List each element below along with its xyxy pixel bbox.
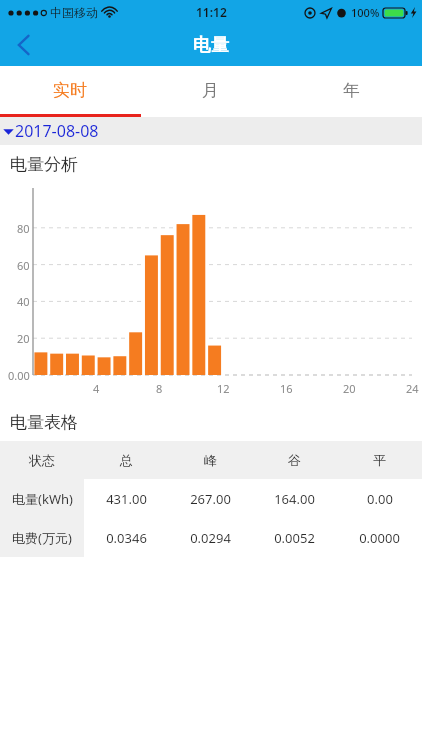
staticText: 80 [17,221,30,236]
staticText: 0.0000 [359,529,400,547]
button[interactable]: 月 [140,66,281,114]
staticText: 20 [343,381,356,396]
staticText: 24 [406,381,419,396]
staticText: 267.00 [190,490,231,508]
staticText: 20 [17,331,30,346]
staticText: 峰 [204,452,217,468]
staticText: 电量分析 [10,154,78,175]
staticText: 12 [217,381,230,396]
staticText: 年 [343,80,360,101]
staticText: 0.00 [367,490,393,508]
staticText: 电量表格 [10,412,78,433]
button[interactable]: Back [0,24,48,66]
staticText: 状态 [29,452,55,468]
staticText: 谷 [288,452,301,468]
staticText: 平 [373,452,386,468]
staticText: 16 [280,381,293,396]
staticText: 0.0294 [190,529,231,547]
staticText: 0.00 [8,368,30,383]
staticText: 0.0346 [106,529,147,547]
staticText: 4 [93,381,100,396]
staticText: 11:12 [196,4,227,20]
staticText: 电量 [193,34,229,57]
staticText: 月 [202,80,219,101]
staticText: 100% [351,5,380,20]
staticText: 2017-08-08 [15,120,99,142]
staticText: 0.0052 [274,529,315,547]
button[interactable]: 2017-08-08 [0,117,422,145]
staticText: 总 [120,452,133,468]
staticText: 电费(万元) [12,529,72,547]
staticText: 8 [156,381,163,396]
staticText: 60 [17,258,30,273]
staticText: 431.00 [106,490,147,508]
staticText: 164.00 [274,490,315,508]
staticText: 中国移动 [50,5,98,20]
button[interactable]: 年 [281,66,422,114]
staticText: 40 [17,294,30,309]
button[interactable]: 实时 [0,66,140,114]
staticText: 实时 [53,80,87,101]
staticText: 电量(kWh) [12,490,73,508]
